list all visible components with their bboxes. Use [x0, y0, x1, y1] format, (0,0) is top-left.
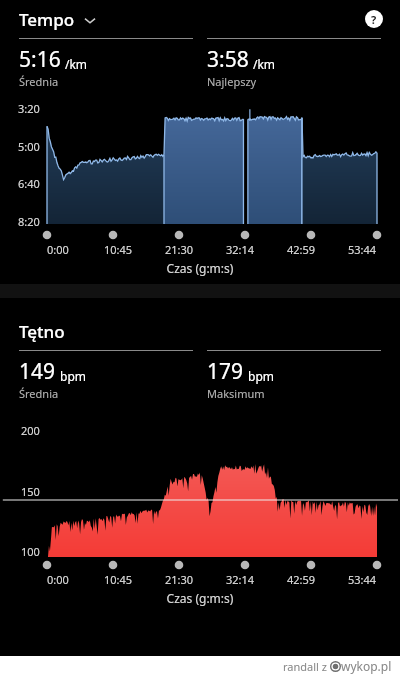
button[interactable]: 3:58: [207, 38, 381, 89]
staticText: Czas (g:m:s): [0, 590, 400, 606]
staticText: 42:59: [287, 242, 316, 257]
staticText: 100: [21, 544, 40, 559]
staticText: 5:16: [19, 45, 61, 74]
staticText: 0:00: [47, 572, 69, 587]
staticText: Tętno: [19, 320, 65, 343]
staticText: 6:40: [18, 176, 40, 191]
staticText: bpm: [60, 368, 86, 384]
staticText: 8:20: [18, 214, 40, 229]
staticText: 3:20: [18, 101, 40, 116]
staticText: Średnia: [19, 386, 59, 401]
staticText: /km: [65, 56, 88, 72]
staticText: 10:45: [104, 572, 133, 587]
staticText: Najlepszy: [207, 74, 257, 89]
button[interactable]: Tempo: [17, 4, 99, 35]
staticText: 179: [207, 357, 244, 386]
staticText: 5:00: [18, 139, 40, 154]
staticText: 53:44: [348, 572, 377, 587]
staticText: /km: [253, 56, 276, 72]
staticText: 149: [19, 357, 56, 386]
staticText: Czas (g:m:s): [0, 260, 400, 276]
button[interactable]: Tętno: [17, 316, 67, 347]
staticText: 32:14: [226, 242, 255, 257]
staticText: 0:00: [47, 242, 69, 257]
staticText: Maksimum: [207, 386, 265, 401]
button[interactable]: 5:16: [19, 38, 193, 89]
staticText: bpm: [248, 368, 274, 384]
staticText: wykop.pl: [341, 658, 392, 674]
button[interactable]: 149: [19, 350, 193, 401]
staticText: Tempo: [19, 8, 75, 31]
staticText: 200: [21, 423, 40, 438]
button[interactable]: 179: [207, 350, 381, 401]
staticText: 21:30: [165, 572, 194, 587]
staticText: 3:58: [207, 45, 249, 74]
staticText: 53:44: [348, 242, 377, 257]
staticText: 21:30: [165, 242, 194, 257]
staticText: 10:45: [104, 242, 133, 257]
staticText: 42:59: [287, 572, 316, 587]
staticText: randall z: [283, 659, 330, 674]
button[interactable]: Pomoc: [363, 8, 385, 30]
staticText: 32:14: [226, 572, 255, 587]
staticText: 150: [21, 484, 40, 499]
staticText: Średnia: [19, 74, 59, 89]
staticText: ?: [371, 12, 377, 27]
